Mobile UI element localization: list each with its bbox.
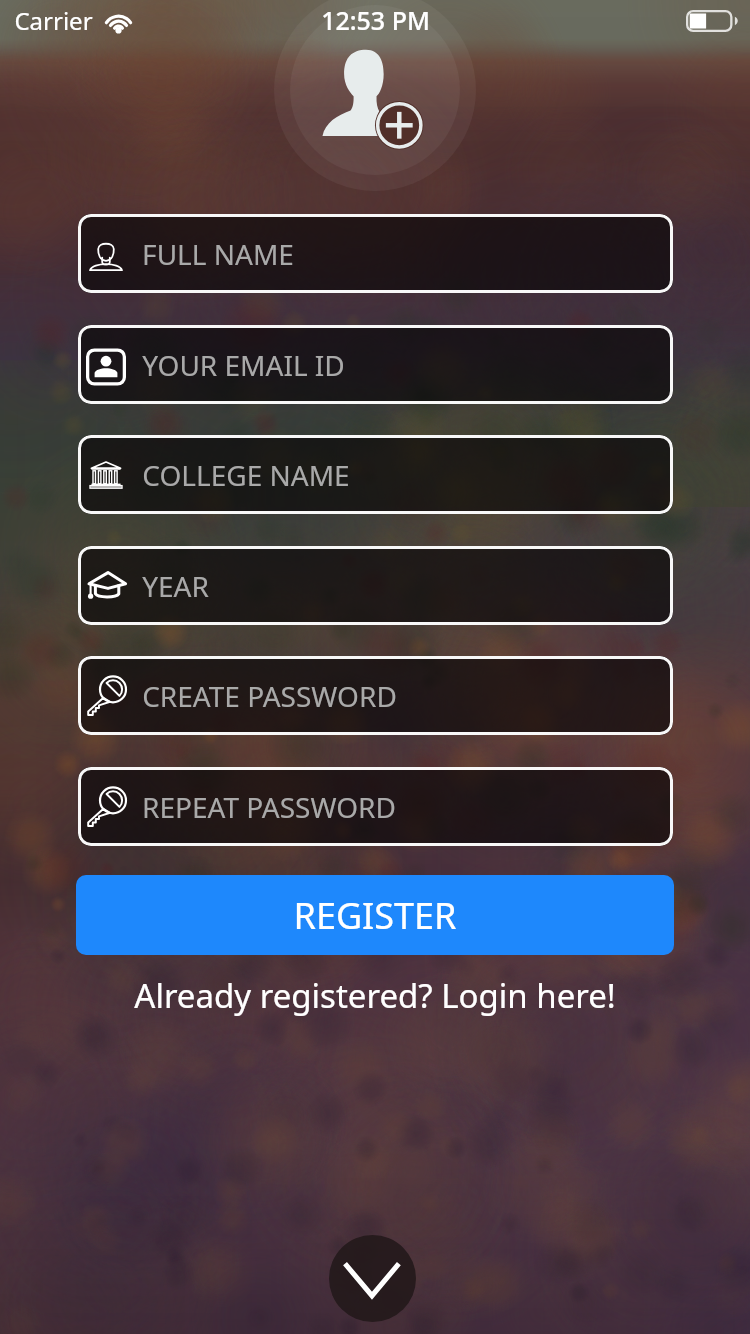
button[interactable]: REGISTER [76, 875, 674, 955]
button[interactable]: YOUR EMAIL ID [78, 325, 673, 404]
button[interactable]: REPEAT PASSWORD [78, 767, 673, 846]
staticText: YEAR [142, 567, 209, 605]
staticText: YOUR EMAIL ID [142, 346, 345, 384]
button[interactable]: FULL NAME [78, 214, 673, 293]
staticText: REGISTER [293, 891, 457, 940]
button[interactable]: YEAR [78, 546, 673, 625]
staticText: Carrier [14, 4, 93, 37]
staticText: Already registered? Login here! [134, 973, 616, 1018]
button[interactable]: Add profile photo [324, 48, 426, 152]
button[interactable]: COLLEGE NAME [78, 435, 673, 514]
staticText: REPEAT PASSWORD [142, 788, 396, 826]
staticText: FULL NAME [142, 235, 294, 273]
button[interactable]: CREATE PASSWORD [78, 656, 673, 735]
staticText: 12:53 PM [321, 3, 430, 37]
staticText: COLLEGE NAME [142, 456, 350, 494]
staticText: CREATE PASSWORD [142, 677, 397, 715]
button[interactable]: Already registered? Login here! [0, 969, 750, 1021]
button[interactable]: Scroll down [329, 1235, 416, 1322]
